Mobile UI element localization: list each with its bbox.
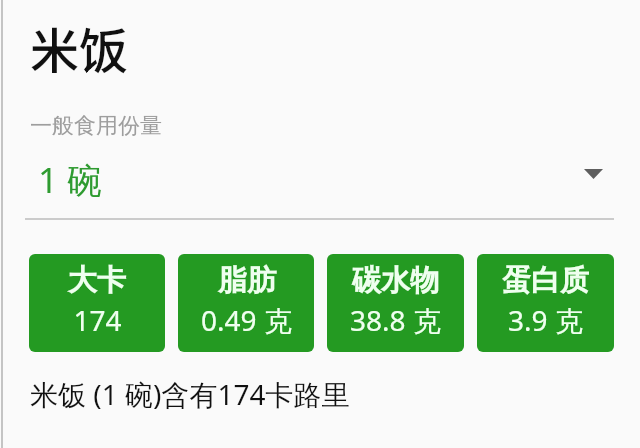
staticText: 米饭 — [30, 12, 129, 83]
staticText: 1 碗 — [38, 156, 103, 204]
button[interactable]: 大卡 — [29, 254, 165, 352]
staticText: 大卡 — [68, 262, 126, 299]
staticText: 蛋白质 — [502, 262, 589, 299]
button[interactable]: 碳水物 — [327, 254, 464, 352]
button[interactable]: Serving size, 1 碗 — [0, 156, 640, 204]
button[interactable]: 蛋白质 — [477, 254, 614, 352]
staticText: 174 — [73, 301, 122, 339]
staticText: 脂肪 — [218, 262, 276, 299]
staticText: 米饭 (1 碗)含有174卡路里 — [30, 375, 350, 413]
staticText: 38.8 克 — [350, 301, 441, 339]
staticText: 3.9 克 — [508, 301, 583, 339]
staticText: 0.49 克 — [201, 301, 292, 339]
button[interactable]: 脂肪 — [178, 254, 314, 352]
staticText: 一般食用份量 — [30, 112, 162, 140]
staticText: 碳水物 — [352, 262, 439, 299]
